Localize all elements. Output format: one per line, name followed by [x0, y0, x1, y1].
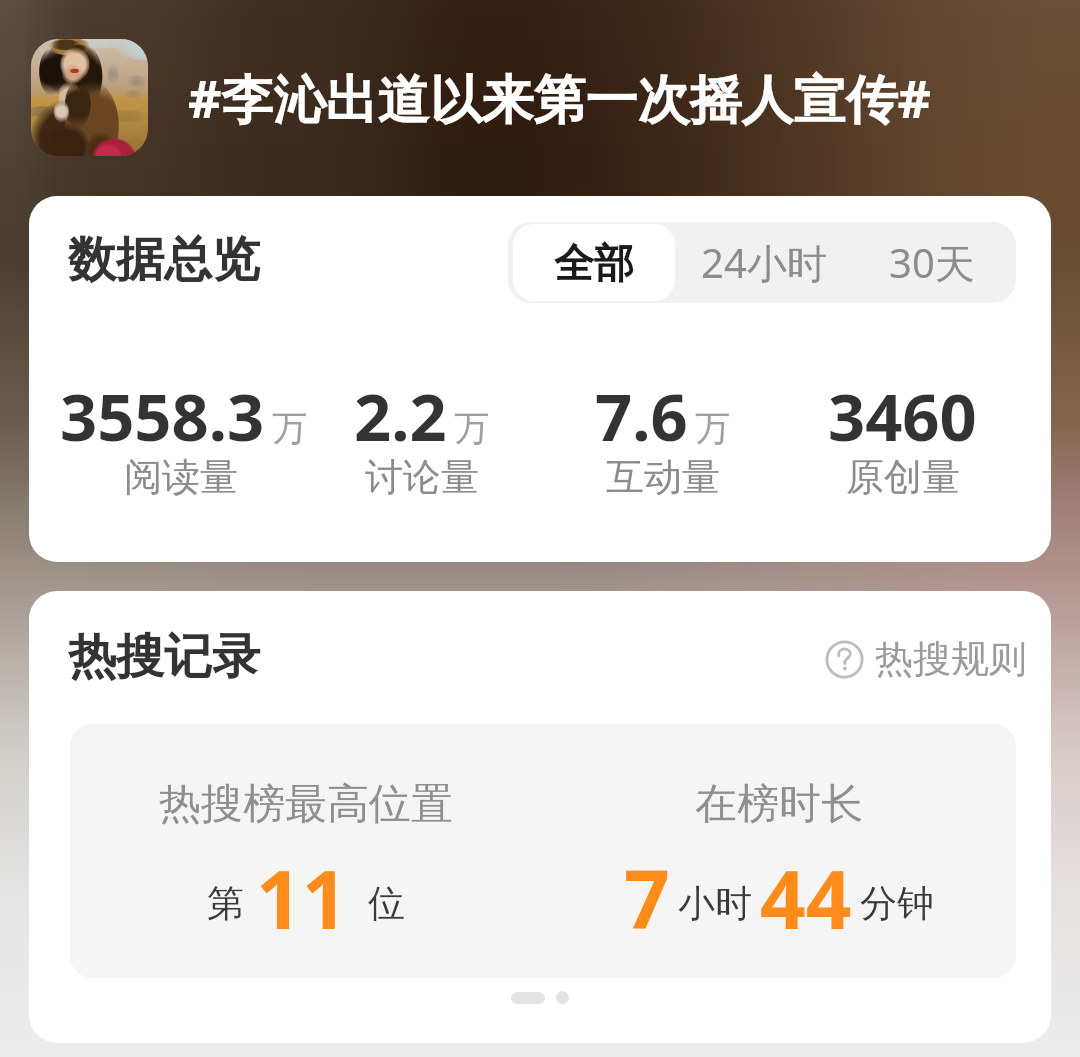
- staticText: 位: [368, 880, 405, 927]
- staticText: 互动量: [606, 453, 720, 501]
- button[interactable]: 第 2 页: [556, 991, 569, 1004]
- staticText: 原创量: [846, 453, 960, 501]
- staticText: 讨论量: [365, 453, 479, 501]
- staticText: 小时: [678, 880, 752, 927]
- button[interactable]: 2.2: [301, 372, 542, 509]
- staticText: 2.2: [354, 372, 447, 461]
- staticText: 3460: [828, 372, 977, 461]
- staticText: 万: [454, 406, 489, 450]
- button[interactable]: 30天: [848, 222, 1016, 303]
- staticText: 在榜时长: [695, 778, 863, 831]
- staticText: 数据总览: [68, 230, 260, 290]
- staticText: 万: [272, 406, 301, 450]
- button[interactable]: 热搜规则: [825, 635, 1027, 683]
- staticText: 第: [207, 880, 244, 927]
- staticText: 7.6: [595, 372, 688, 461]
- staticText: 44: [760, 843, 852, 952]
- button[interactable]: #李沁出道以来第一次摇人宣传#: [188, 62, 932, 133]
- button[interactable]: 第 1 页: [511, 992, 545, 1004]
- staticText: 阅读量: [124, 453, 238, 501]
- staticText: #李沁出道以来第一次摇人宣传#: [188, 62, 932, 133]
- button[interactable]: 热搜榜最高位置: [70, 724, 1016, 978]
- button[interactable]: 话题头像: [31, 39, 148, 156]
- staticText: 全部: [554, 238, 634, 288]
- staticText: 热搜规则: [875, 635, 1027, 683]
- staticText: 热搜记录: [68, 627, 260, 687]
- button[interactable]: 7.6: [542, 372, 783, 509]
- staticText: 24小时: [701, 235, 827, 290]
- staticText: 万: [695, 406, 730, 450]
- button[interactable]: 3558.3: [60, 372, 301, 509]
- button[interactable]: 全部: [508, 222, 680, 303]
- staticText: 分钟: [860, 880, 934, 927]
- staticText: 30天: [889, 235, 975, 290]
- staticText: 热搜榜最高位置: [159, 778, 453, 831]
- staticText: 3558.3: [60, 372, 265, 461]
- staticText: 7: [624, 843, 670, 952]
- button[interactable]: 24小时: [680, 222, 848, 303]
- button[interactable]: 3460: [783, 372, 1022, 509]
- staticText: 11: [256, 843, 348, 952]
